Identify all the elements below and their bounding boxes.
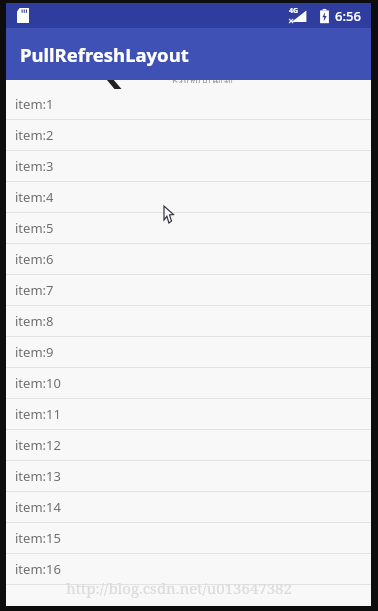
staticText: item:14 [15,498,61,516]
staticText: item:11 [15,405,61,423]
staticText: item:12 [15,436,61,454]
staticText: item:2 [15,126,54,144]
staticText: item:3 [15,157,54,175]
staticText: item:8 [15,312,54,330]
button[interactable]: item:4 [6,182,371,213]
staticText: 6:56 [335,7,361,25]
button[interactable]: PullRefreshLayout [6,28,371,80]
button[interactable]: item:13 [6,461,371,492]
button[interactable]: item:14 [6,492,371,523]
staticText: item:10 [15,374,61,392]
button[interactable]: item:7 [6,275,371,306]
button[interactable]: item:11 [6,399,371,430]
staticText: item:15 [15,529,61,547]
button[interactable]: item:1 [6,89,371,120]
button[interactable]: item:15 [6,523,371,554]
staticText: http://blog.csdn.net/u013647382 [66,578,292,598]
button[interactable]: item:3 [6,151,371,182]
button[interactable]: item:16 [6,554,371,585]
staticText: 下拉即可刷新 [168,80,234,83]
staticText: item:4 [15,188,54,206]
button[interactable]: item:8 [6,306,371,337]
button[interactable]: item:6 [6,244,371,275]
staticText: item:1 [15,95,54,113]
staticText: item:9 [15,343,54,361]
button[interactable]: item:12 [6,430,371,461]
staticText: item:5 [15,219,54,237]
staticText: item:13 [15,467,61,485]
staticText: PullRefreshLayout [20,42,189,67]
button[interactable]: item:10 [6,368,371,399]
staticText: item:16 [15,560,61,578]
button[interactable]: item:9 [6,337,371,368]
staticText: item:6 [15,250,54,268]
button[interactable]: item:5 [6,213,371,244]
button[interactable]: item:2 [6,120,371,151]
staticText: item:7 [15,281,54,299]
staticText: 4G [289,6,299,16]
